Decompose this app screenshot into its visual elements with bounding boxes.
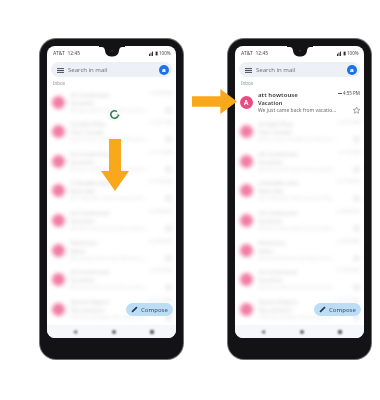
- staticText: a: [350, 66, 354, 74]
- button[interactable]: att howtouse: [235, 146, 364, 176]
- button[interactable]: att howtouse: [235, 205, 364, 235]
- staticText: AT&T 12:45: [53, 50, 81, 57]
- button[interactable]: Account: [159, 65, 169, 75]
- button[interactable]: Google Play: [47, 116, 176, 146]
- button[interactable]: Home: [293, 325, 310, 338]
- button[interactable]: att howtouse: [235, 264, 364, 294]
- button[interactable]: Compose: [126, 303, 173, 316]
- staticText: Compose: [141, 306, 168, 314]
- button[interactable]: Back: [66, 325, 83, 338]
- button[interactable]: Quora Digest: [47, 294, 176, 324]
- staticText: A: [244, 98, 249, 107]
- button[interactable]: LinkedIn Jobs: [235, 175, 364, 205]
- button[interactable]: att howtouse: [47, 146, 176, 176]
- staticText: LinkedIn Jobs: [70, 179, 111, 187]
- staticText: att howtouse: [258, 91, 298, 99]
- button[interactable]: Home: [105, 325, 122, 338]
- button[interactable]: att howtouse: [47, 264, 176, 294]
- button[interactable]: att howtouse: [47, 205, 176, 235]
- other: Menu: [244, 66, 252, 74]
- button[interactable]: LinkedIn Jobs: [47, 175, 176, 205]
- button[interactable]: Pinterest: [47, 235, 176, 265]
- staticText: a: [162, 66, 166, 74]
- staticText: 100%: [347, 50, 359, 56]
- button[interactable]: att howtouse: [47, 87, 176, 117]
- button[interactable]: Refresh: [108, 108, 121, 121]
- button[interactable]: Pinterest: [235, 235, 364, 265]
- staticText: Inbox: [53, 80, 66, 86]
- other: Menu: [56, 66, 64, 74]
- staticText: Inbox: [241, 80, 254, 86]
- staticText: Search in mail: [68, 66, 108, 74]
- button[interactable]: Account: [347, 65, 357, 75]
- button[interactable]: Google Play: [235, 116, 364, 146]
- staticText: Compose: [329, 306, 356, 314]
- staticText: The best answers this week just for you.…: [70, 314, 149, 321]
- staticText: 100%: [159, 50, 171, 56]
- staticText: 4:55 PM: [343, 90, 360, 96]
- button[interactable]: Back: [254, 325, 271, 338]
- staticText: Vacation: [258, 99, 283, 107]
- staticText: The best answers this week just for you.…: [258, 314, 337, 321]
- staticText: We just came back from vacation You shou…: [258, 107, 337, 114]
- button[interactable]: Recent apps: [331, 325, 348, 338]
- staticText: We just came back from vacation You shou…: [70, 166, 149, 173]
- staticText: att howtouse: [70, 150, 110, 158]
- button[interactable]: Recent apps: [143, 325, 160, 338]
- button[interactable]: Compose: [314, 303, 361, 316]
- button[interactable]: Quora Digest: [235, 294, 364, 324]
- button[interactable]: Menu: [51, 62, 172, 77]
- staticText: AT&T 12:45: [241, 50, 269, 57]
- button[interactable]: Menu: [239, 62, 360, 77]
- button[interactable]: A: [235, 87, 364, 117]
- staticText: We just came back from vacation You shou…: [70, 107, 149, 114]
